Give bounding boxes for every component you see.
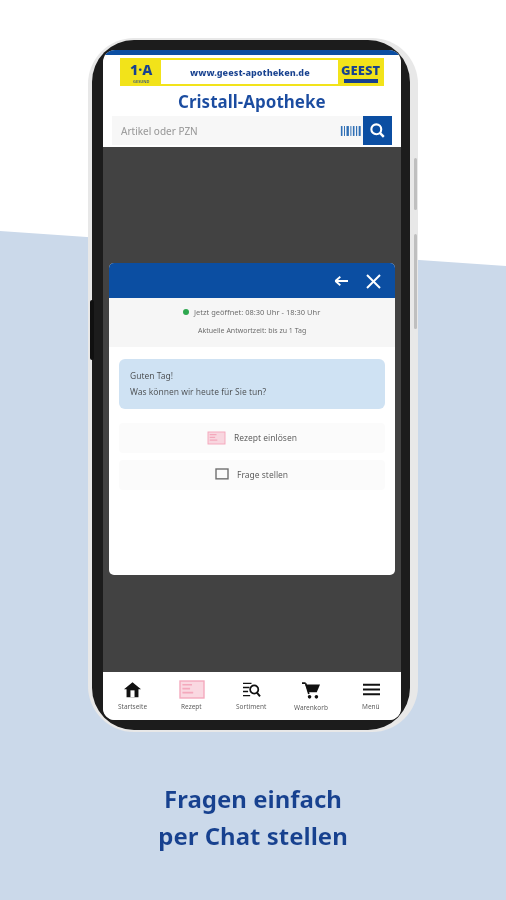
staticText: Warenkorb — [294, 703, 328, 712]
staticText: Startseite — [118, 702, 148, 711]
button[interactable]: Artikel oder PZN — [112, 116, 363, 145]
staticText: Rezept — [181, 702, 202, 711]
staticText: Jetzt geöffnet: 08:30 Uhr - 18:30 Uhr — [194, 307, 321, 317]
staticText: 1·A — [130, 60, 153, 79]
staticText: Was können wir heute für Sie tun? — [130, 386, 267, 398]
staticText: GESUND — [133, 79, 150, 84]
button[interactable]: Schließen — [358, 266, 388, 296]
staticText: Sortiment — [236, 702, 267, 711]
button[interactable]: Zurück — [326, 266, 356, 296]
staticText: Aktuelle Antwortzeit: bis zu 1 Tag — [198, 326, 307, 336]
button[interactable]: Startseite — [103, 672, 162, 720]
staticText: Menü — [362, 702, 380, 711]
button[interactable]: Sortiment — [221, 672, 281, 720]
staticText: GEEST — [341, 61, 381, 79]
staticText: Artikel oder PZN — [121, 124, 198, 138]
button[interactable]: Rezept — [162, 672, 221, 720]
staticText: Guten Tag! — [130, 370, 174, 382]
button[interactable]: 1·A — [120, 58, 384, 86]
button[interactable]: Warenkorb — [281, 672, 341, 720]
button[interactable]: Frage stellen — [119, 460, 385, 490]
button[interactable]: Rezept einlösen — [119, 423, 385, 453]
other: Barcode scannen — [338, 122, 356, 140]
staticText: Fragen einfach — [164, 782, 342, 815]
button[interactable]: Suchen — [363, 116, 392, 145]
staticText: Frage stellen — [237, 469, 289, 481]
button[interactable]: Menü — [341, 672, 401, 720]
staticText: www.geest-apotheken.de — [190, 66, 310, 78]
staticText: Cristall-Apotheke — [178, 90, 326, 113]
staticText: per Chat stellen — [158, 819, 348, 852]
staticText: Rezept einlösen — [234, 432, 297, 444]
